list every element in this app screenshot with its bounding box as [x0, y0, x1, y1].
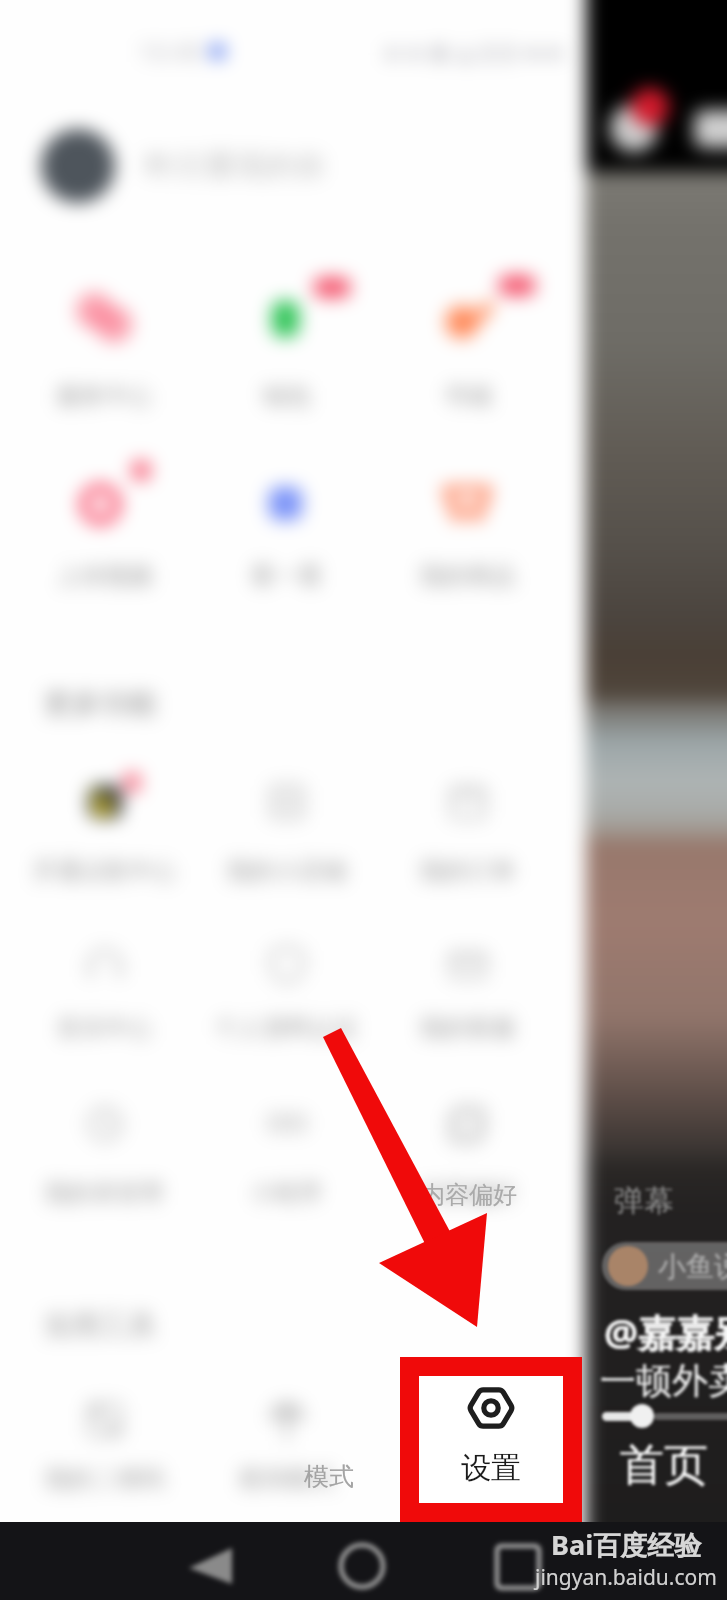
button[interactable]: 音乐中心 [14, 916, 195, 1059]
staticText: 我的商品 [377, 561, 558, 591]
button[interactable]: Home [322, 1522, 402, 1600]
staticText: 实用工具 [44, 1308, 156, 1343]
staticText: 我的小店铺 [196, 856, 377, 886]
staticText: 昨日重现的你 [145, 147, 325, 185]
staticText: 我的客服 [377, 1013, 558, 1043]
staticText: @嘉嘉别 [604, 1306, 727, 1358]
staticText: 书城 [377, 381, 558, 411]
staticText: 开通点歌中心 [14, 856, 195, 886]
staticText: 服务中心 [14, 381, 195, 411]
staticText: 一顿外卖 [600, 1358, 727, 1403]
staticText: 音乐中心 [14, 1013, 195, 1043]
button[interactable]: 小程序 [196, 1076, 377, 1224]
staticText: 16:48 [138, 34, 202, 68]
button[interactable]: Recent apps [478, 1522, 558, 1600]
button[interactable]: Back [180, 1522, 260, 1600]
staticText: 内容偏好 [377, 1178, 558, 1208]
staticText: 小程序 [196, 1178, 377, 1208]
button[interactable]: 我的商品 [377, 454, 558, 607]
button[interactable]: 我的小店铺 [196, 754, 377, 902]
staticText: 弹幕 [614, 1182, 674, 1220]
staticText: 钱包 [196, 381, 377, 411]
button[interactable]: 钱包 [196, 271, 377, 427]
staticText: 夜间模式 [196, 1464, 377, 1494]
button[interactable]: 开通点歌中心 [14, 754, 195, 902]
staticText: 设置 [461, 1449, 521, 1487]
button[interactable]: 我的订单 [377, 754, 558, 902]
button[interactable]: 夜间模式 [196, 1372, 377, 1510]
staticText: jingyan.baidu.com [535, 1563, 717, 1592]
staticText: 看一看 [196, 561, 377, 591]
button[interactable]: 昨日重现的你 [41, 129, 325, 203]
button[interactable]: 内容偏好 [377, 1076, 558, 1224]
staticText: 我的订单 [377, 856, 558, 886]
staticText: Bai百度经验 [551, 1526, 702, 1563]
button[interactable]: 我的录音带 [14, 1076, 195, 1224]
button[interactable]: 看一看 [196, 454, 377, 607]
staticText: 小鱼说 [658, 1249, 727, 1284]
button[interactable]: 个人资料认证 [196, 916, 377, 1059]
staticText: 首页 [620, 1438, 708, 1493]
button[interactable]: 我的客服 [377, 916, 558, 1059]
staticText: 上传视频 [14, 561, 195, 591]
staticText: 个人资料认证 [196, 1013, 377, 1043]
staticText: 模式 [304, 1461, 354, 1492]
button[interactable]: 服务中心 [14, 271, 195, 427]
staticText: 我的二维码 [14, 1464, 195, 1494]
button[interactable]: 小鱼说 [602, 1242, 727, 1290]
staticText: ▪ ▪ ● ▲ ▮ ▮ ▬▬ [384, 34, 566, 67]
button[interactable]: 我的二维码 [14, 1372, 195, 1510]
button[interactable]: 上传视频 [14, 454, 195, 607]
staticText: 更多功能 [44, 686, 156, 721]
button[interactable]: 设置 [419, 1376, 563, 1503]
button[interactable]: 书城 [377, 271, 558, 427]
staticText: 内容偏好 [421, 1180, 517, 1210]
staticText: 我的录音带 [14, 1178, 195, 1208]
